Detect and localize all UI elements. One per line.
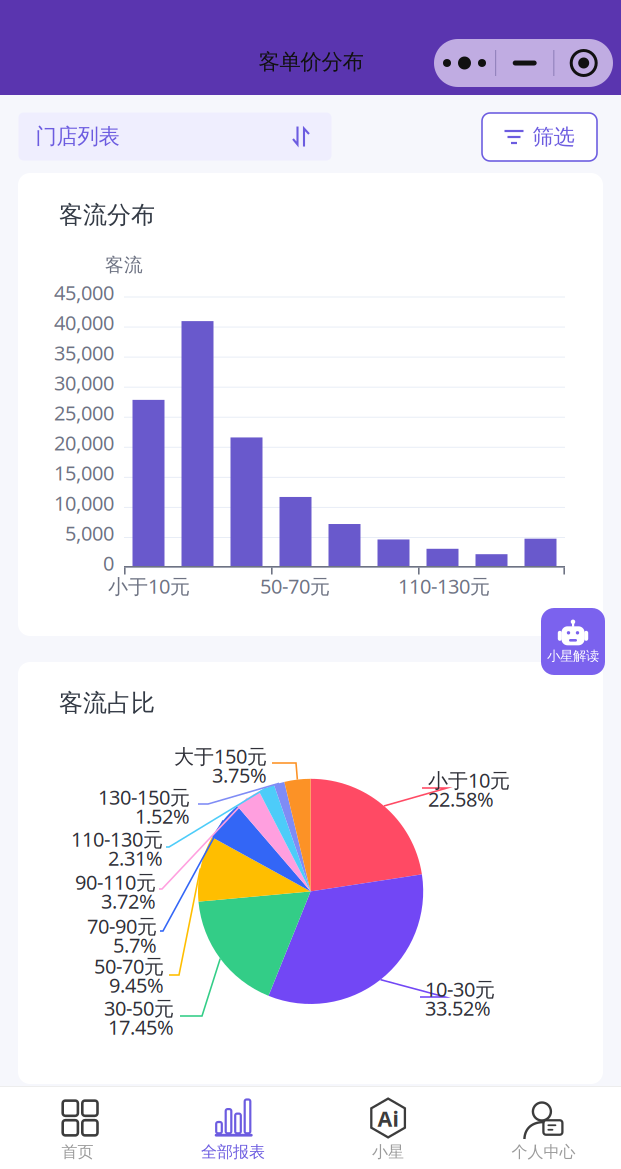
button[interactable]: 全部报表 xyxy=(155,1086,310,1169)
staticText: 5,000 xyxy=(65,520,114,546)
staticText: 110-130元 xyxy=(398,573,490,599)
staticText: 130-150元 xyxy=(98,784,190,810)
staticText: 35,000 xyxy=(54,339,114,366)
button[interactable]: 门店列表 xyxy=(18,112,331,160)
staticText: 客单价分布 xyxy=(258,49,363,75)
staticText: 20,000 xyxy=(54,429,114,456)
button[interactable]: 小星解读 xyxy=(541,608,605,675)
staticText: 17.45% xyxy=(108,1014,174,1040)
staticText: 小星解读 xyxy=(547,648,599,664)
staticText: 10-30元 xyxy=(425,976,495,1002)
staticText: 个人中心 xyxy=(511,1142,575,1162)
staticText: 5.7% xyxy=(113,932,157,958)
staticText: 小于10元 xyxy=(428,767,510,793)
staticText: 全部报表 xyxy=(201,1142,265,1162)
staticText: 客流 xyxy=(105,253,143,276)
button[interactable]: 首页 xyxy=(0,1086,155,1169)
button[interactable]: Ai xyxy=(311,1086,466,1169)
staticText: 客流占比 xyxy=(59,688,155,718)
staticText: 45,000 xyxy=(54,279,114,306)
button[interactable]: 个人中心 xyxy=(466,1086,621,1169)
staticText: 90-110元 xyxy=(75,869,156,895)
staticText: 10,000 xyxy=(54,490,114,516)
staticText: 3.75% xyxy=(212,762,267,788)
staticText: 大于150元 xyxy=(174,743,267,769)
staticText: 50-70元 xyxy=(94,953,164,979)
staticText: 1.52% xyxy=(135,803,190,829)
staticText: 0 xyxy=(103,550,114,576)
staticText: 33.52% xyxy=(425,995,491,1021)
staticText: 22.58% xyxy=(428,786,494,812)
staticText: 筛选 xyxy=(532,124,574,150)
staticText: 40,000 xyxy=(54,309,114,336)
staticText: 门店列表 xyxy=(35,123,119,150)
staticText: 30,000 xyxy=(54,369,114,396)
staticText: 2.31% xyxy=(108,845,163,871)
staticText: 110-130元 xyxy=(71,826,163,852)
staticText: 小于10元 xyxy=(108,573,190,599)
staticText: 3.72% xyxy=(101,888,156,914)
staticText: 70-90元 xyxy=(87,913,157,939)
button[interactable]: 筛选 xyxy=(482,113,597,161)
staticText: 首页 xyxy=(62,1142,94,1162)
staticText: 30-50元 xyxy=(104,995,174,1021)
staticText: 9.45% xyxy=(109,972,164,998)
staticText: 客流分布 xyxy=(59,200,155,230)
staticText: 小星 xyxy=(372,1142,404,1162)
staticText: 25,000 xyxy=(54,399,114,426)
staticText: 50-70元 xyxy=(260,573,330,599)
staticText: 15,000 xyxy=(54,460,114,486)
staticText: Ai xyxy=(378,1104,399,1133)
